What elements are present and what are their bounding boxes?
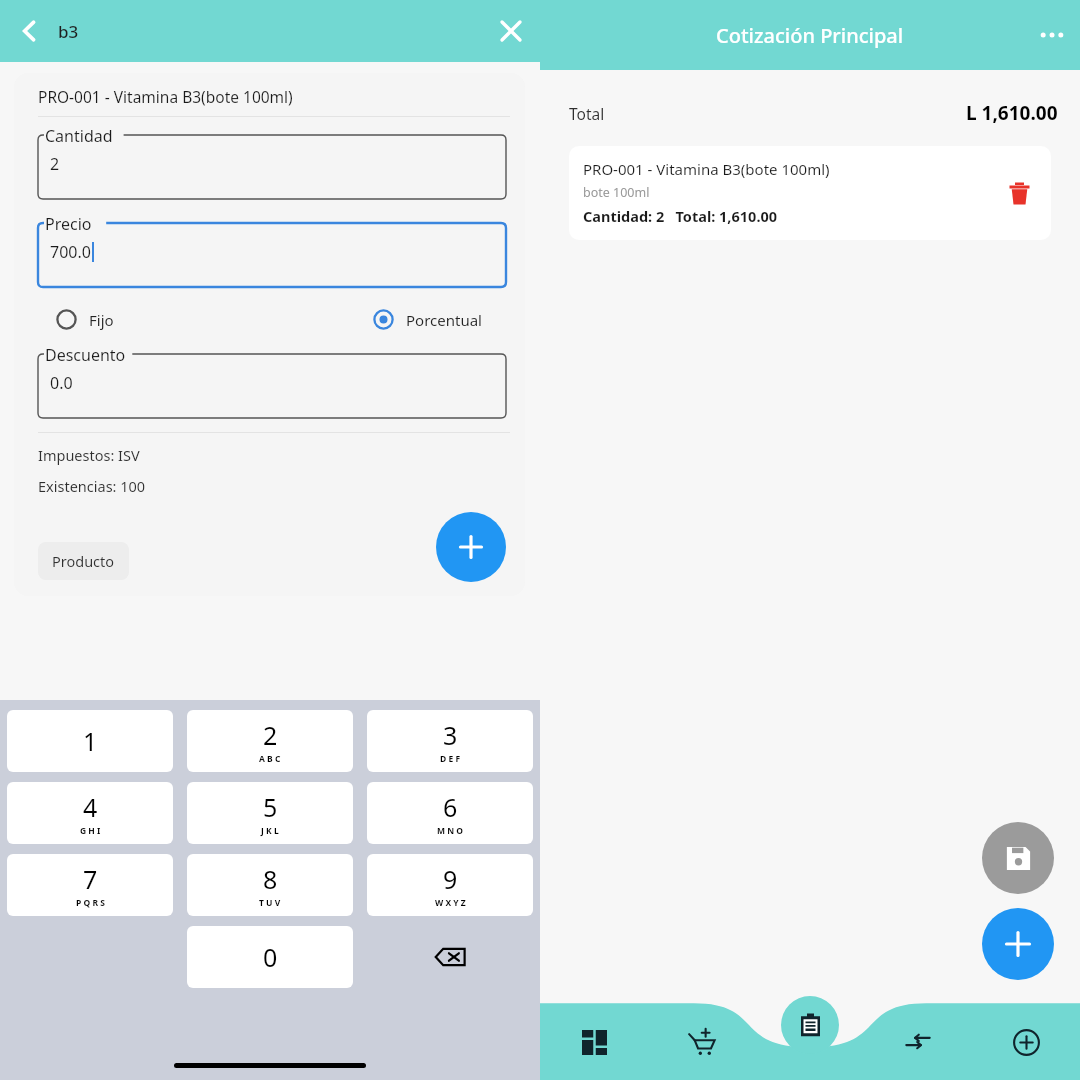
staticText: PRO-001 - Vitamina B3(bote 100ml) bbox=[38, 86, 293, 107]
button[interactable]: 2 bbox=[187, 710, 353, 772]
button[interactable]: PRO-001 - Vitamina B3(bote 100ml) bbox=[569, 146, 1051, 240]
staticText: D E F bbox=[440, 753, 461, 765]
button[interactable]: Porcentual bbox=[369, 305, 486, 334]
staticText: T U V bbox=[259, 897, 281, 909]
staticText: Cotización Principal bbox=[716, 22, 904, 49]
staticText: Existencias: 100 bbox=[38, 476, 146, 496]
staticText: Impuestos: ISV bbox=[38, 445, 140, 465]
button[interactable]: Backspace bbox=[360, 926, 540, 988]
staticText: L 1,610.00 bbox=[966, 100, 1058, 126]
button[interactable]: 6 bbox=[367, 782, 533, 844]
staticText: 0 bbox=[263, 940, 278, 974]
button[interactable]: Back bbox=[0, 2, 58, 60]
staticText: Porcentual bbox=[406, 310, 482, 330]
button[interactable]: Delete item bbox=[997, 171, 1041, 215]
button[interactable]: Quotes bbox=[781, 996, 839, 1054]
button[interactable]: 8 bbox=[187, 854, 353, 916]
staticText: 8 bbox=[263, 862, 278, 896]
button[interactable]: Producto bbox=[38, 542, 129, 580]
button[interactable]: Fijo bbox=[52, 305, 118, 334]
button[interactable]: Add bbox=[972, 1004, 1080, 1080]
staticText: 2 bbox=[263, 718, 278, 752]
staticText: 7 bbox=[83, 862, 98, 896]
staticText: 0.0 bbox=[50, 372, 73, 394]
button[interactable]: 9 bbox=[367, 854, 533, 916]
staticText: Cantidad bbox=[45, 125, 113, 147]
staticText: P Q R S bbox=[76, 897, 105, 909]
staticText: Cantidad: 2 Total: 1,610.00 bbox=[583, 206, 778, 226]
staticText: PRO-001 - Vitamina B3(bote 100ml) bbox=[583, 159, 830, 179]
staticText: W X Y Z bbox=[435, 897, 466, 909]
button[interactable]: Add bbox=[982, 908, 1054, 980]
staticText: 3 bbox=[443, 718, 458, 752]
staticText: bote 100ml bbox=[583, 184, 650, 201]
staticText: b3 bbox=[58, 20, 79, 43]
button[interactable]: Close bbox=[482, 2, 540, 60]
staticText: 2 bbox=[50, 153, 60, 175]
button[interactable]: Transfer bbox=[864, 1004, 972, 1080]
button[interactable]: Add product bbox=[436, 512, 506, 582]
staticText: Total bbox=[569, 103, 605, 124]
staticText: A B C bbox=[259, 753, 281, 765]
button[interactable]: 3 bbox=[367, 710, 533, 772]
staticText: Descuento bbox=[45, 344, 126, 366]
button[interactable]: Descuento bbox=[26, 344, 512, 424]
staticText: 9 bbox=[443, 862, 458, 896]
staticText: 6 bbox=[443, 790, 458, 824]
staticText: G H I bbox=[80, 825, 101, 837]
staticText: 4 bbox=[83, 790, 98, 824]
button[interactable]: Cantidad bbox=[26, 125, 512, 205]
staticText: 700.0 bbox=[50, 241, 91, 263]
button[interactable]: 5 bbox=[187, 782, 353, 844]
button[interactable]: Save bbox=[982, 822, 1054, 894]
button[interactable]: 4 bbox=[7, 782, 173, 844]
button[interactable]: 1 bbox=[7, 710, 173, 772]
button[interactable]: More options bbox=[1024, 7, 1080, 63]
staticText: Fijo bbox=[89, 310, 114, 330]
staticText: 1 bbox=[83, 724, 98, 758]
staticText: M N O bbox=[437, 825, 464, 837]
staticText: 5 bbox=[263, 790, 278, 824]
button[interactable]: 7 bbox=[7, 854, 173, 916]
button[interactable]: Precio bbox=[26, 213, 512, 293]
staticText: Producto bbox=[52, 551, 115, 571]
button[interactable]: Cart bbox=[648, 1004, 756, 1080]
button[interactable]: 0 bbox=[187, 926, 353, 988]
button[interactable]: Dashboard bbox=[540, 1004, 648, 1080]
staticText: Precio bbox=[45, 213, 92, 235]
staticText: J K L bbox=[261, 825, 279, 837]
